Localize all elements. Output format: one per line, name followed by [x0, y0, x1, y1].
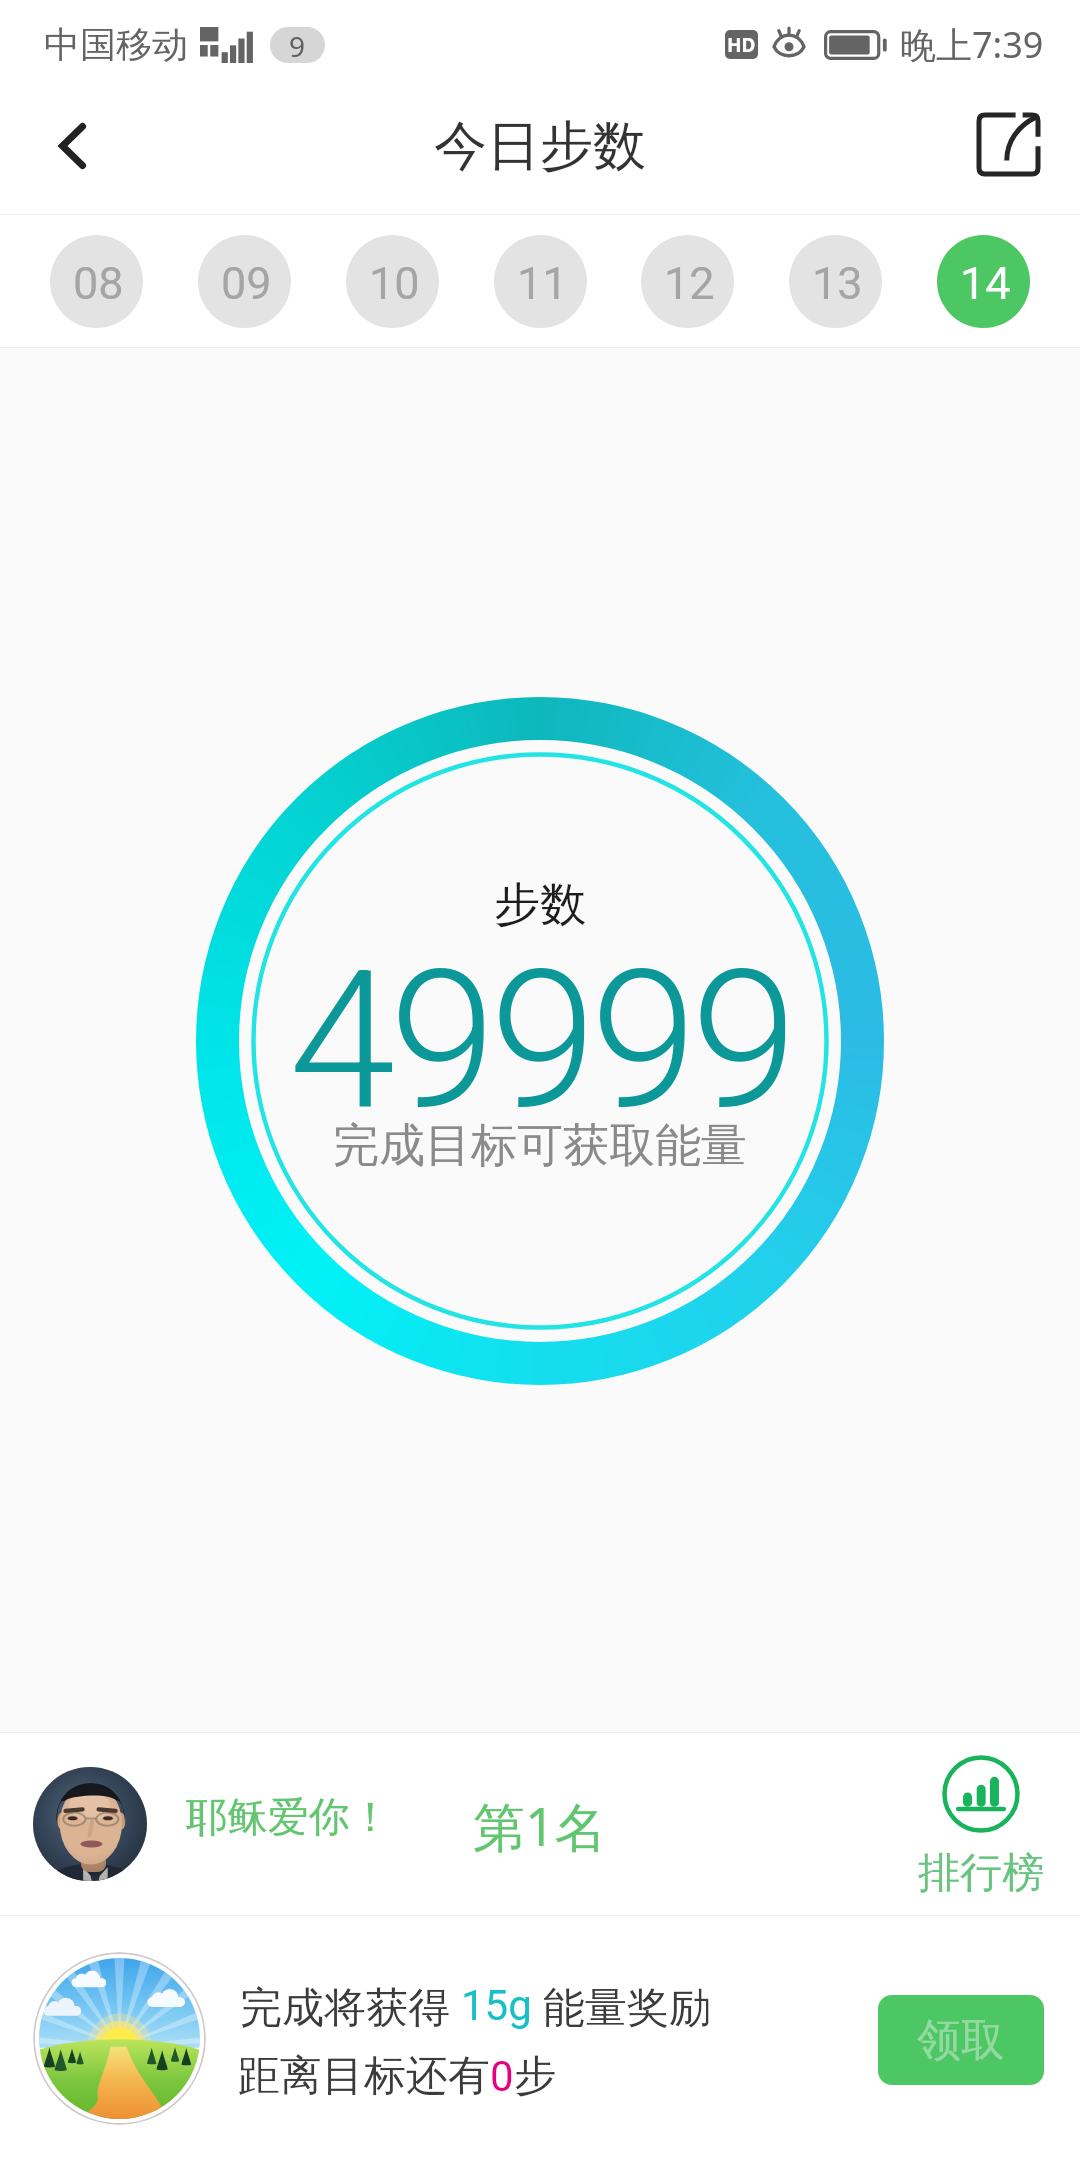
staticText: 08: [73, 257, 124, 310]
button[interactable]: 14: [937, 235, 1030, 328]
staticText: 14: [960, 257, 1011, 310]
button[interactable]: 12: [641, 235, 734, 328]
button[interactable]: 排行榜: [913, 1755, 1049, 1900]
button[interactable]: 10: [346, 235, 439, 328]
staticText: 领取: [917, 2013, 1005, 2068]
button[interactable]: Share: [950, 88, 1080, 215]
staticText: 11: [517, 257, 568, 310]
staticText: 步: [514, 2050, 556, 2103]
staticText: 晚上7:39: [900, 20, 1044, 69]
staticText: 15g: [461, 1981, 532, 2030]
staticText: 49999: [289, 928, 792, 1153]
button[interactable]: 领取: [878, 1995, 1044, 2085]
button[interactable]: 11: [494, 235, 587, 328]
button[interactable]: 09: [198, 235, 291, 328]
staticText: 排行榜: [918, 1847, 1044, 1900]
staticText: 9: [289, 27, 306, 63]
staticText: 完成目标可获取能量: [333, 1117, 747, 1175]
staticText: 距离目标还有: [238, 2050, 490, 2103]
staticText: 09: [221, 257, 272, 310]
staticText: 耶稣爱你！: [186, 1792, 391, 1844]
staticText: 步数: [494, 876, 586, 934]
staticText: 今日步数: [434, 113, 646, 180]
button[interactable]: 08: [50, 235, 143, 328]
staticText: 10: [369, 257, 420, 310]
staticText: HD: [727, 32, 756, 58]
staticText: 第1名: [473, 1790, 607, 1861]
staticText: 完成将获得: [240, 1977, 461, 2034]
button[interactable]: Back: [0, 88, 140, 215]
staticText: 中国移动: [44, 22, 188, 67]
button[interactable]: 13: [789, 235, 882, 328]
staticText: 13: [812, 257, 863, 310]
staticText: 12: [664, 257, 715, 310]
staticText: 0: [490, 2052, 514, 2101]
staticText: 能量奖励: [532, 1977, 711, 2034]
